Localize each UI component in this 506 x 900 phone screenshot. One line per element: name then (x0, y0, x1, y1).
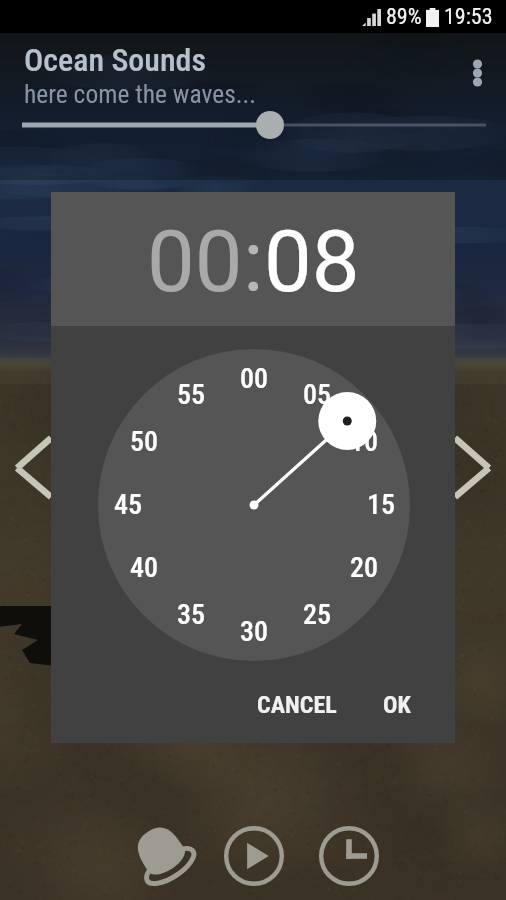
staticText: here come the waves... (24, 79, 256, 109)
button[interactable]: OK (369, 681, 425, 729)
staticText: Ocean Sounds (24, 41, 207, 79)
staticText: 10 (342, 425, 386, 458)
staticText: CANCEL (257, 691, 337, 719)
staticText: 89% (386, 4, 422, 30)
staticText: 55 (169, 378, 213, 411)
button[interactable]: Play (216, 818, 292, 894)
button[interactable]: Timer (311, 818, 387, 894)
staticText: 15 (359, 488, 403, 521)
staticText: 35 (169, 598, 213, 631)
button[interactable]: More options (458, 48, 496, 98)
staticText: 20 (342, 551, 386, 584)
staticText: 05 (295, 378, 339, 411)
button[interactable]: Previous sound (0, 424, 68, 512)
staticText: 45 (106, 488, 150, 521)
staticText: 50 (122, 425, 166, 458)
staticText: OK (383, 691, 411, 719)
button[interactable]: Ring volume (121, 818, 197, 894)
staticText: 40 (122, 551, 166, 584)
staticText: : (243, 212, 264, 312)
staticText: 00 (232, 362, 276, 395)
staticText: 00 (147, 212, 243, 312)
staticText: 08 (264, 212, 360, 312)
staticText: 25 (295, 598, 339, 631)
staticText: 19:53 (444, 4, 493, 30)
staticText: 30 (232, 615, 276, 648)
button[interactable]: Next sound (438, 424, 506, 512)
button[interactable]: CANCEL (243, 681, 351, 729)
